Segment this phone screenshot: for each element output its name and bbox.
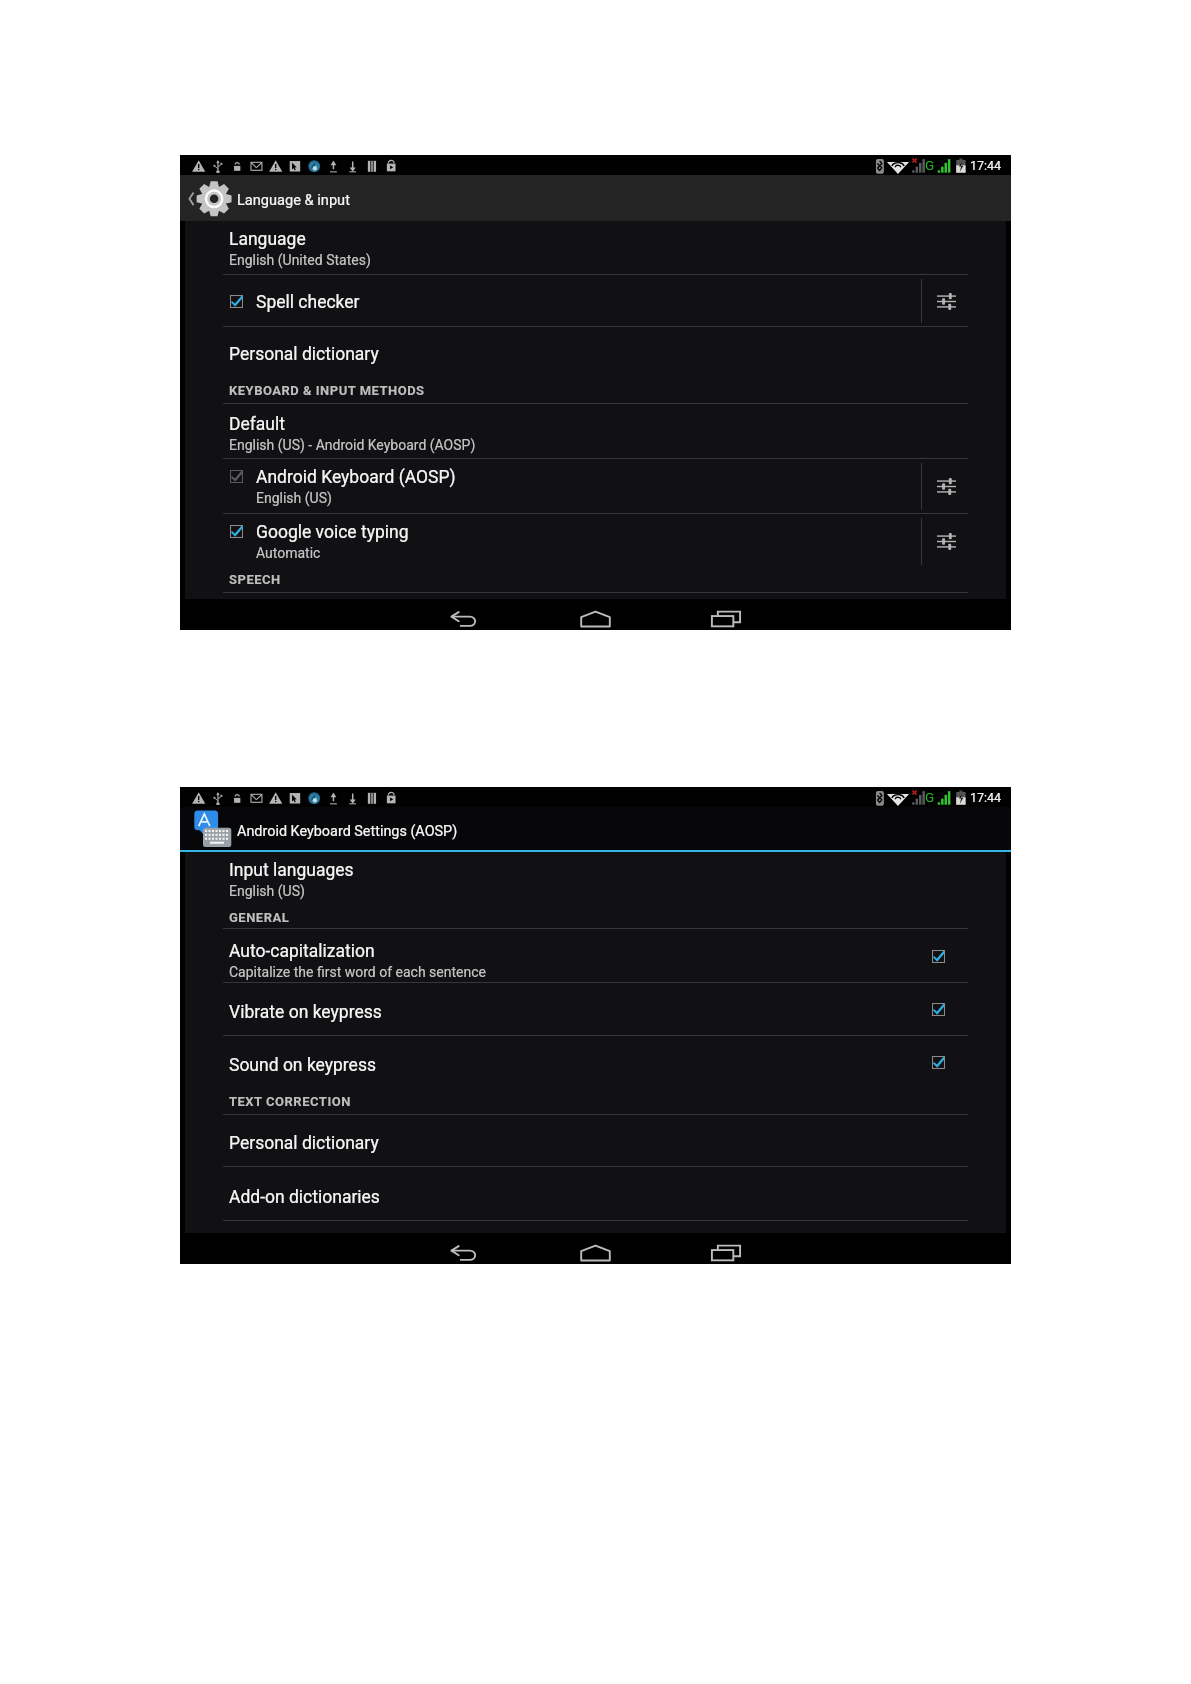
button[interactable]: Home: [574, 1233, 616, 1264]
button[interactable]: Language: [185, 221, 1006, 275]
staticText: TEXT CORRECTION: [229, 1094, 351, 1109]
staticText: Vibrate on keypress: [229, 1002, 382, 1023]
staticText: Default: [229, 414, 285, 435]
staticText: Language & input: [237, 191, 350, 208]
button[interactable]: Settings: [922, 514, 1006, 569]
staticText: English (United States): [229, 252, 371, 268]
button[interactable]: Navigate up: [180, 807, 1011, 850]
button[interactable]: Navigate up: [180, 175, 1011, 221]
staticText: SPEECH: [229, 572, 281, 587]
staticText: Language: [229, 229, 306, 250]
staticText: English (US): [256, 490, 332, 506]
button[interactable]: Add-on dictionaries: [185, 1167, 1006, 1221]
staticText: Sound on keypress: [229, 1055, 376, 1076]
button[interactable]: Spell checker: [185, 275, 921, 327]
button[interactable]: Android Keyboard (AOSP): [185, 459, 921, 514]
button[interactable]: Default: [185, 404, 1006, 459]
button[interactable]: Google voice typing: [185, 514, 921, 569]
button[interactable]: Personal dictionary: [185, 1115, 1006, 1167]
button[interactable]: Auto-capitalization: [185, 929, 1006, 983]
staticText: English (US): [229, 883, 305, 899]
button[interactable]: Recent apps: [705, 1233, 747, 1264]
staticText: GENERAL: [229, 910, 290, 925]
button[interactable]: Recent apps: [705, 599, 747, 630]
button[interactable]: Sound on keypress: [185, 1036, 1006, 1088]
staticText: English (US) - Android Keyboard (AOSP): [229, 437, 476, 453]
staticText: Capitalize the first word of each senten…: [229, 964, 486, 980]
staticText: Personal dictionary: [229, 344, 379, 365]
button[interactable]: Vibrate on keypress: [185, 983, 1006, 1036]
staticText: 17:44: [970, 158, 1002, 173]
button[interactable]: Settings: [922, 275, 1006, 327]
staticText: Add-on dictionaries: [229, 1187, 380, 1208]
button[interactable]: Personal dictionary: [185, 327, 1006, 377]
staticText: Personal dictionary: [229, 1133, 379, 1154]
staticText: Google voice typing: [256, 522, 409, 543]
staticText: Android Keyboard (AOSP): [256, 467, 456, 488]
button[interactable]: Back: [444, 1233, 486, 1264]
button[interactable]: Home: [574, 599, 616, 630]
staticText: Android Keyboard Settings (AOSP): [237, 823, 458, 840]
staticText: Auto-capitalization: [229, 941, 375, 962]
staticText: G: [925, 157, 935, 173]
staticText: KEYBOARD & INPUT METHODS: [229, 383, 425, 398]
staticText: Automatic: [256, 545, 321, 561]
staticText: G: [925, 789, 935, 805]
staticText: Input languages: [229, 860, 354, 881]
button[interactable]: Back: [444, 599, 486, 630]
button[interactable]: Settings: [922, 459, 1006, 514]
staticText: 17:44: [970, 790, 1002, 805]
button[interactable]: Input languages: [185, 852, 1006, 900]
staticText: Spell checker: [256, 292, 360, 313]
